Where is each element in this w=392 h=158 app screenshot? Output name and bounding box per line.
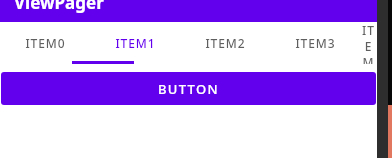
staticText: ITEM2	[205, 35, 246, 51]
staticText: ITEM3	[295, 35, 336, 51]
staticText: ViewPager	[14, 0, 104, 13]
button[interactable]: ITEM3	[270, 22, 360, 64]
button[interactable]: ITEM2	[180, 22, 270, 64]
staticText: ITEM0	[25, 35, 66, 51]
button[interactable]: ITEM0	[0, 22, 90, 64]
button[interactable]: ITEM4	[360, 22, 377, 64]
staticText: BUTTON	[158, 80, 219, 98]
button[interactable]: BUTTON	[1, 72, 376, 105]
staticText: ITEM4	[360, 22, 377, 64]
staticText: ITEM1	[115, 35, 156, 51]
button[interactable]: ITEM1	[90, 22, 180, 64]
